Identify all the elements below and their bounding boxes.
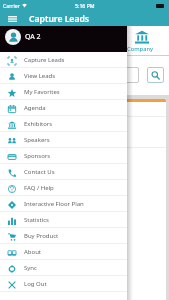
button[interactable]: Open navigation menu [0, 11, 25, 26]
staticText: View Leads [24, 72, 56, 80]
button[interactable]: Sponsors [0, 148, 127, 164]
button[interactable]: Contact Us [0, 164, 127, 180]
staticText: Agenda [24, 104, 46, 112]
staticText: Exhibitors [24, 120, 53, 128]
button[interactable]: Speakers [0, 132, 127, 148]
staticText: Statistics [24, 216, 49, 224]
button[interactable]: Log Out [0, 276, 127, 292]
button[interactable]: Sync [0, 260, 127, 276]
staticText: Company [127, 45, 153, 53]
button[interactable]: Info [80, 26, 121, 55]
staticText: Info [93, 45, 105, 53]
staticText: Carrier [3, 2, 20, 9]
button[interactable]: Capture Leads [0, 52, 127, 68]
staticText: QA 2 [25, 32, 41, 42]
staticText: My Favorites [24, 88, 60, 96]
button[interactable]: FAQ / Help [0, 180, 127, 196]
button[interactable]: Company [121, 26, 162, 55]
staticText: Log Out [24, 280, 47, 288]
button[interactable]: Interactive Floor Plan [0, 196, 127, 212]
button[interactable]: View Leads [0, 68, 127, 84]
staticText: Contact Us [24, 168, 55, 176]
staticText: Interactive Floor Plan [24, 200, 84, 208]
button[interactable] [3, 99, 166, 300]
button[interactable]: Leads [0, 26, 40, 55]
button[interactable]: Statistics [0, 212, 127, 228]
staticText: Sponsors [24, 152, 51, 160]
staticText: FAQ / Help [24, 184, 54, 192]
staticText: About [24, 248, 42, 256]
button[interactable]: Agenda [0, 100, 127, 116]
staticText: 5:16 PM [75, 2, 95, 9]
staticText: Capture Leads [29, 13, 90, 25]
button[interactable]: My Favorites [0, 84, 127, 100]
button[interactable]: Exhibitors [0, 116, 127, 132]
staticText: Sync [24, 264, 37, 272]
staticText: Capture Leads [24, 56, 65, 64]
button[interactable]: About [0, 244, 127, 260]
button[interactable]: Buy Product [0, 228, 127, 244]
staticText: Agenda [48, 45, 69, 53]
staticText: Buy Product [24, 232, 59, 240]
button[interactable]: Search field [6, 67, 139, 83]
staticText: Leads [10, 45, 26, 53]
staticText: Speakers [24, 136, 50, 144]
button[interactable]: Agenda [40, 26, 80, 55]
button[interactable]: Search [147, 67, 164, 83]
